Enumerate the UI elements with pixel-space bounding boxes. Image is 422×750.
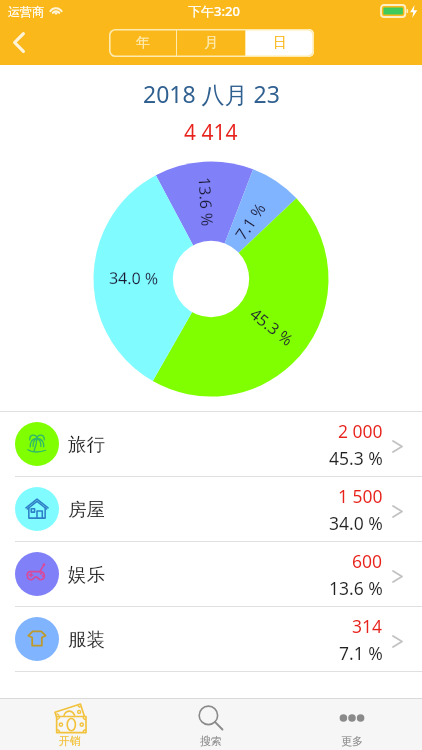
staticText: 旅行 [68, 433, 105, 456]
staticText: 年 [136, 34, 150, 52]
button[interactable]: 日 [246, 29, 314, 57]
button[interactable]: 月 [177, 29, 245, 57]
staticText: 34.0 % [109, 267, 159, 289]
staticText: 开销 [59, 734, 81, 748]
staticText: 600 [352, 549, 383, 573]
staticText: 日 [273, 34, 287, 52]
button[interactable]: 服装 [0, 607, 422, 671]
staticText: 7.1 % [230, 198, 271, 244]
button[interactable]: 搜索 [140, 699, 281, 750]
staticText: 314 [352, 614, 383, 638]
staticText: 7.1 % [339, 641, 383, 665]
button[interactable]: 更多 [281, 699, 422, 750]
staticText: 1 500 [338, 484, 383, 508]
staticText: 月 [204, 34, 218, 52]
staticText: 搜索 [200, 734, 222, 748]
staticText: 13.6 % [329, 576, 383, 600]
button[interactable]: 房屋 [0, 477, 422, 541]
staticText: 13.6 % [193, 176, 218, 228]
staticText: 服装 [68, 628, 105, 651]
staticText: 45.3 % [245, 303, 298, 351]
button[interactable]: 开销 [0, 699, 140, 750]
staticText: 下午3:20 [188, 2, 240, 20]
button[interactable]: 旅行 [0, 412, 422, 476]
button[interactable]: 年 [109, 29, 176, 57]
staticText: 45.3 % [329, 446, 383, 470]
staticText: 2018 八月 23 [143, 78, 280, 109]
staticText: 更多 [341, 734, 363, 748]
button[interactable]: 娱乐 [0, 542, 422, 606]
staticText: 34.0 % [329, 511, 383, 535]
staticText: 4 414 [184, 118, 238, 147]
staticText: 房屋 [68, 498, 105, 521]
staticText: 娱乐 [68, 563, 105, 586]
button[interactable]: Back [0, 22, 40, 65]
staticText: 2 000 [338, 419, 383, 443]
staticText: 运营商 [8, 4, 44, 19]
